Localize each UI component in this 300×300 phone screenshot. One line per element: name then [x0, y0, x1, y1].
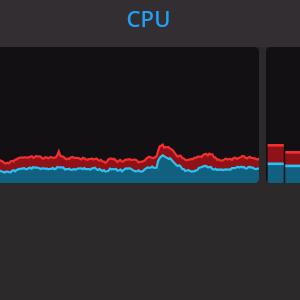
- staticText: CPU: [126, 3, 171, 33]
- button[interactable]: [266, 47, 300, 183]
- button[interactable]: [0, 47, 259, 183]
